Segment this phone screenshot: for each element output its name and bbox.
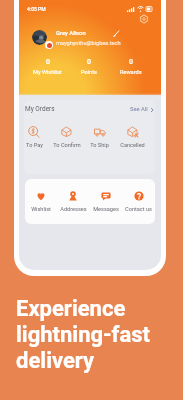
staticText: To Pay bbox=[26, 142, 43, 149]
staticText: Rewards bbox=[120, 69, 142, 76]
staticText: Grey Allson bbox=[56, 30, 86, 37]
staticText: 0 bbox=[46, 58, 50, 66]
button[interactable]: Messages bbox=[89, 190, 122, 213]
button[interactable]: Edit profile bbox=[111, 28, 121, 38]
button[interactable]: See All bbox=[130, 106, 154, 113]
staticText: mayghyothu@bigbee.tech bbox=[56, 40, 121, 47]
staticText: 0 bbox=[129, 58, 133, 66]
staticText: My Orders bbox=[25, 105, 55, 113]
staticText: Cancelled bbox=[120, 142, 145, 149]
button[interactable]: Wishlist bbox=[25, 190, 57, 213]
staticText: 4:05 PM bbox=[27, 6, 46, 12]
button[interactable]: Cancelled bbox=[116, 126, 149, 149]
staticText: See All bbox=[130, 106, 148, 113]
button[interactable]: 0 bbox=[110, 58, 152, 76]
button[interactable]: Addresses bbox=[57, 190, 89, 213]
staticText: Addresses bbox=[60, 206, 87, 213]
button[interactable]: To Confirm bbox=[50, 126, 83, 149]
button[interactable]: Contact us bbox=[122, 190, 155, 213]
staticText: delivery bbox=[16, 348, 95, 374]
staticText: To Ship bbox=[90, 142, 109, 149]
staticText: Wishlist bbox=[31, 206, 51, 213]
staticText: Points bbox=[81, 69, 97, 76]
staticText: Messages bbox=[93, 206, 119, 213]
staticText: My Wishlist bbox=[33, 69, 62, 76]
button[interactable]: To Ship bbox=[83, 126, 116, 149]
staticText: 0 bbox=[87, 58, 91, 66]
staticText: Contact us bbox=[125, 206, 152, 213]
staticText: To Confirm bbox=[53, 142, 81, 149]
staticText: Experience bbox=[16, 296, 126, 322]
button[interactable]: 0 bbox=[27, 58, 68, 76]
button[interactable]: Settings bbox=[138, 13, 150, 25]
staticText: lightning-fast bbox=[16, 322, 151, 348]
button[interactable]: 0 bbox=[68, 58, 110, 76]
button[interactable]: To Pay bbox=[24, 126, 50, 149]
